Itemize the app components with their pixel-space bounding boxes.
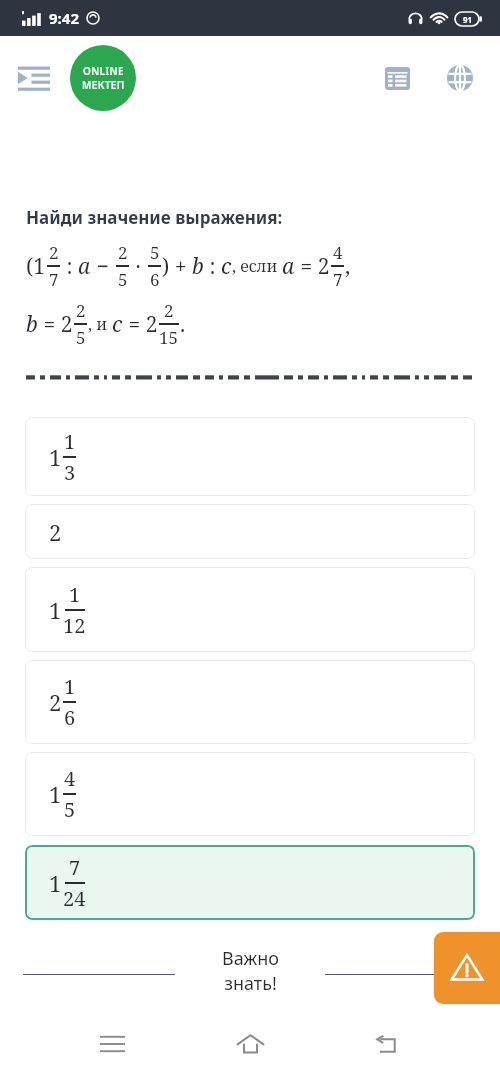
staticText: a bbox=[282, 252, 295, 281]
staticText: c bbox=[112, 310, 123, 339]
staticText: 1 bbox=[49, 868, 62, 898]
staticText: 2 bbox=[118, 241, 128, 264]
staticText: = 2 bbox=[123, 310, 158, 339]
staticText: 7 bbox=[69, 854, 81, 881]
button[interactable]: 1 bbox=[25, 567, 475, 652]
staticText: ONLINE bbox=[83, 64, 124, 78]
staticText: · bbox=[130, 252, 147, 281]
staticText: 6 bbox=[64, 704, 76, 731]
staticText: 3 bbox=[64, 459, 76, 486]
staticText: 4 bbox=[64, 765, 76, 792]
staticText: 2 bbox=[49, 241, 59, 264]
button[interactable]: Home bbox=[224, 1018, 276, 1070]
staticText: 1 bbox=[49, 779, 62, 809]
staticText: 2 bbox=[164, 299, 174, 322]
staticText: , bbox=[345, 252, 351, 281]
staticText: a bbox=[78, 252, 91, 281]
staticText: b bbox=[26, 310, 38, 339]
staticText: 7 bbox=[49, 268, 59, 291]
staticText: (1 bbox=[26, 252, 46, 281]
button[interactable]: Back bbox=[362, 1018, 414, 1070]
staticText: ) + bbox=[162, 252, 192, 281]
staticText: 2 bbox=[49, 517, 62, 547]
staticText: 1 bbox=[64, 428, 76, 455]
staticText: 9:42 bbox=[49, 8, 79, 28]
button[interactable]: 2 bbox=[25, 504, 475, 559]
button[interactable]: ONLINE bbox=[70, 45, 136, 111]
staticText: 12 bbox=[63, 612, 86, 639]
button[interactable]: 1 bbox=[25, 845, 475, 920]
staticText: 7 bbox=[333, 268, 343, 291]
staticText: = 2 bbox=[38, 310, 73, 339]
staticText: 1 bbox=[69, 581, 81, 608]
staticText: знать! bbox=[224, 971, 277, 996]
staticText: − bbox=[91, 252, 115, 281]
staticText: b bbox=[192, 252, 204, 281]
staticText: 91 bbox=[463, 14, 473, 25]
button[interactable]: 2 bbox=[25, 660, 475, 744]
button[interactable]: Important warning bbox=[434, 932, 500, 1004]
staticText: 1 bbox=[49, 595, 62, 625]
staticText: 5 bbox=[64, 796, 76, 823]
staticText: 5 bbox=[76, 326, 86, 349]
staticText: 15 bbox=[159, 326, 179, 349]
staticText: : bbox=[61, 252, 78, 281]
staticText: c bbox=[221, 252, 232, 281]
staticText: Найди значение выражения: bbox=[26, 206, 283, 229]
button[interactable]: Language bbox=[438, 56, 482, 100]
button[interactable]: 1 bbox=[25, 417, 475, 496]
button[interactable]: 1 bbox=[25, 752, 475, 836]
staticText: 24 bbox=[63, 885, 86, 912]
staticText: . bbox=[180, 310, 186, 339]
staticText: 1 bbox=[64, 673, 76, 700]
button[interactable]: Recent apps bbox=[86, 1018, 138, 1070]
staticText: 1 bbox=[49, 442, 62, 472]
staticText: , и bbox=[88, 313, 112, 335]
staticText: = 2 bbox=[295, 252, 330, 281]
staticText: Важно bbox=[222, 946, 279, 971]
staticText: МЕКТЕП bbox=[82, 78, 125, 92]
staticText: 2 bbox=[76, 299, 86, 322]
staticText: : bbox=[204, 252, 221, 281]
button[interactable]: Content list bbox=[375, 56, 419, 100]
staticText: 5 bbox=[150, 241, 160, 264]
staticText: 2 bbox=[49, 687, 62, 717]
staticText: 6 bbox=[150, 268, 160, 291]
button[interactable]: Menu bbox=[10, 54, 58, 102]
staticText: , если bbox=[232, 255, 282, 277]
staticText: 4 bbox=[333, 241, 343, 264]
staticText: 5 bbox=[118, 268, 128, 291]
